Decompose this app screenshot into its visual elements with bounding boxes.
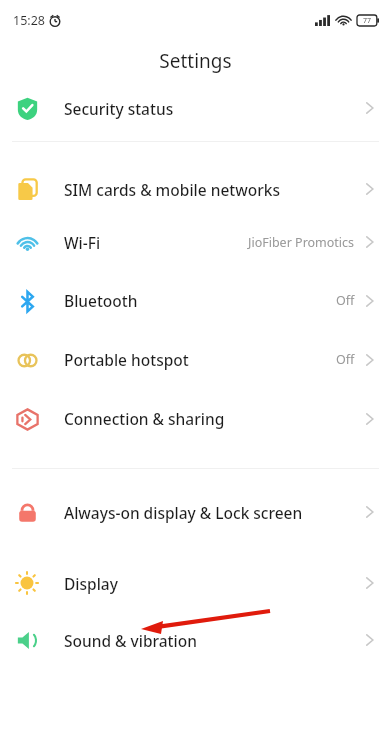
- button[interactable]: Security status: [0, 82, 391, 134]
- staticText: 77: [363, 16, 372, 26]
- other: Wi-Fi: [16, 231, 39, 254]
- other: Sound & vibration: [16, 629, 39, 652]
- button[interactable]: Connection & sharing: [0, 389, 391, 448]
- button[interactable]: SIM cards: [0, 165, 391, 213]
- button[interactable]: Bluetooth: [0, 271, 391, 330]
- staticText: 15:28: [13, 12, 45, 29]
- button[interactable]: Portable hotspot: [0, 330, 391, 389]
- other: Lock screen: [16, 501, 39, 524]
- staticText: Always-on display & Lock screen: [64, 502, 311, 523]
- staticText: SIM cards & mobile networks: [64, 179, 311, 200]
- staticText: Sound & vibration: [64, 630, 311, 651]
- staticText: Connection & sharing: [64, 408, 311, 429]
- other: Bluetooth: [16, 290, 39, 313]
- staticText: Bluetooth: [64, 290, 336, 311]
- staticText: Off: [336, 351, 355, 368]
- button[interactable]: Lock screen: [0, 469, 391, 555]
- staticText: Portable hotspot: [64, 349, 336, 370]
- other: Security status: [16, 97, 39, 120]
- other: Portable hotspot: [16, 349, 39, 372]
- staticText: Wi-Fi: [64, 232, 248, 253]
- staticText: JioFiber Promotics: [248, 234, 355, 251]
- staticText: Security status: [64, 98, 311, 119]
- staticText: Off: [336, 292, 355, 309]
- button[interactable]: Wi-Fi: [0, 213, 391, 271]
- staticText: Settings: [159, 48, 232, 74]
- staticText: Display: [64, 573, 311, 594]
- other: Display: [15, 571, 39, 595]
- button[interactable]: Sound & vibration: [0, 611, 391, 669]
- other: Connection & sharing: [16, 408, 39, 431]
- other: SIM cards: [16, 178, 39, 201]
- button[interactable]: Display: [0, 555, 391, 611]
